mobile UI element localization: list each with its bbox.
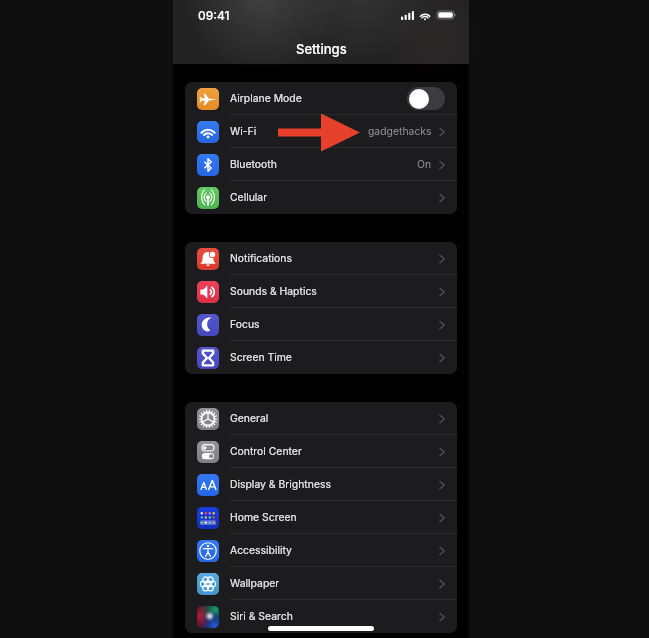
button[interactable]: Siri & Search — [185, 600, 457, 633]
staticText: gadgethacks — [368, 125, 432, 138]
staticText: Airplane Mode — [230, 92, 302, 105]
staticText: Display & Brightness — [230, 478, 331, 491]
staticText: Bluetooth — [230, 158, 277, 171]
staticText: Accessibility — [230, 544, 292, 557]
staticText: Settings — [296, 41, 347, 57]
button[interactable]: Wallpaper — [185, 567, 457, 600]
staticText: Sounds & Haptics — [230, 285, 317, 298]
button[interactable]: Accessibility — [185, 534, 457, 567]
button[interactable]: Sounds & Haptics — [185, 275, 457, 308]
staticText: Notifications — [230, 252, 292, 265]
staticText: Wi-Fi — [230, 125, 257, 138]
staticText: Control Center — [230, 445, 302, 458]
button[interactable]: Control Center — [185, 435, 457, 468]
staticText: Screen Time — [230, 351, 292, 364]
staticText: Focus — [230, 318, 260, 331]
button[interactable]: Bluetooth — [185, 148, 457, 181]
staticText: Cellular — [230, 191, 268, 204]
button[interactable]: General — [185, 402, 457, 435]
button[interactable]: Home Screen — [185, 501, 457, 534]
button[interactable]: Airplane Mode — [185, 82, 457, 115]
button[interactable]: Screen Time — [185, 341, 457, 374]
staticText: 09:41 — [198, 8, 230, 23]
button[interactable]: Wi-Fi — [185, 115, 457, 148]
staticText: On — [417, 158, 432, 171]
button[interactable]: Toggle Airplane Mode — [407, 87, 445, 110]
staticText: Home Screen — [230, 511, 297, 524]
staticText: Siri & Search — [230, 610, 293, 623]
button[interactable]: Display & Brightness — [185, 468, 457, 501]
staticText: Wallpaper — [230, 577, 280, 590]
button[interactable]: Cellular — [185, 181, 457, 214]
button[interactable]: Notifications — [185, 242, 457, 275]
button[interactable]: Focus — [185, 308, 457, 341]
staticText: General — [230, 412, 269, 425]
